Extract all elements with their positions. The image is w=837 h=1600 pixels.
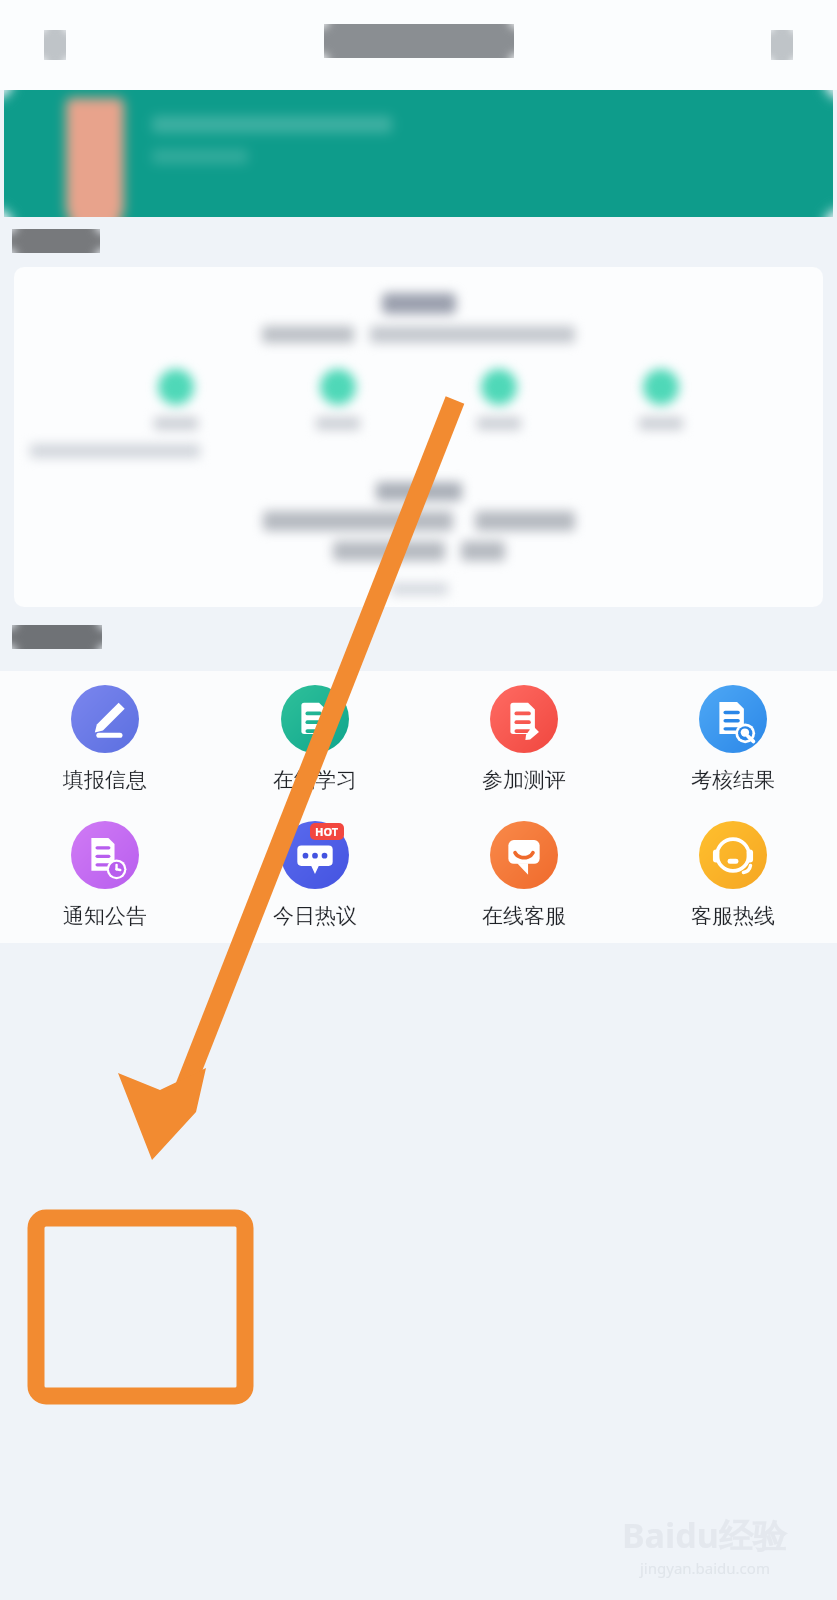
other: 在线客服 bbox=[490, 821, 558, 889]
other: 考核结果 bbox=[699, 685, 767, 753]
staticText: 在线学习 bbox=[273, 767, 357, 793]
button[interactable]: 客服热线 bbox=[628, 807, 837, 943]
other: 文档 bbox=[490, 685, 558, 753]
button[interactable]: 在线客服 bbox=[419, 807, 628, 943]
staticText: HOT bbox=[315, 824, 339, 839]
button[interactable]: 文档 bbox=[419, 671, 628, 807]
button[interactable] bbox=[14, 267, 823, 607]
other: 今日热议 bbox=[281, 821, 349, 889]
other: 文档 bbox=[281, 685, 349, 753]
button[interactable]: 通知公告 bbox=[0, 807, 210, 943]
button[interactable]: 填报信息 bbox=[0, 671, 210, 807]
staticText: 填报信息 bbox=[63, 767, 147, 793]
other: 填报信息 bbox=[71, 685, 139, 753]
staticText: 在线客服 bbox=[482, 903, 566, 929]
button[interactable] bbox=[4, 90, 833, 217]
staticText: 参加测评 bbox=[482, 767, 566, 793]
staticText: 客服热线 bbox=[691, 903, 775, 929]
other: 通知公告 bbox=[71, 821, 139, 889]
staticText: jingyan.baidu.com bbox=[640, 1558, 770, 1578]
staticText: 今日热议 bbox=[273, 903, 357, 929]
button[interactable]: 文档 bbox=[210, 671, 419, 807]
button[interactable]: 考核结果 bbox=[628, 671, 837, 807]
button[interactable]: 今日热议 bbox=[210, 807, 419, 943]
staticText: 考核结果 bbox=[691, 767, 775, 793]
staticText: 通知公告 bbox=[63, 903, 147, 929]
staticText: Baidu经验 bbox=[622, 1512, 787, 1558]
other: 客服热线 bbox=[699, 821, 767, 889]
